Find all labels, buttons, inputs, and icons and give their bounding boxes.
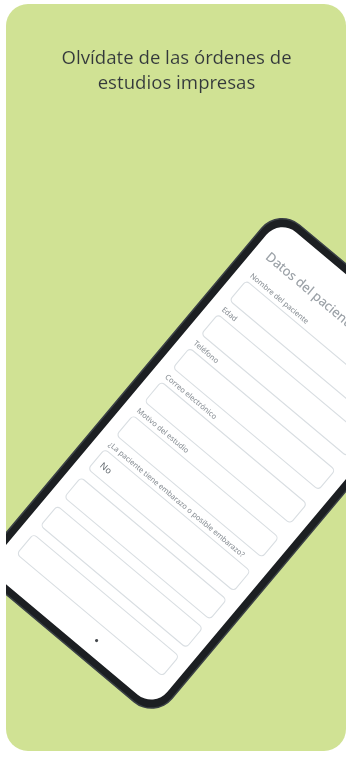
button[interactable]: Olvídate de las órdenes de estudios impr… — [6, 4, 346, 751]
staticText: Olvídate de las órdenes de estudios impr… — [61, 44, 292, 94]
other: Vista previa de la orden de estudio digi… — [6, 4, 346, 751]
